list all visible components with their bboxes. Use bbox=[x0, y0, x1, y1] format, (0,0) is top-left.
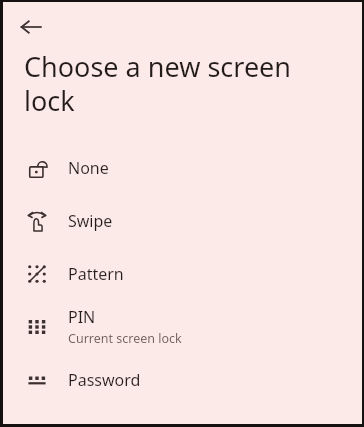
staticText: PIN bbox=[68, 306, 96, 328]
button[interactable]: PIN bbox=[3, 300, 362, 353]
button[interactable]: Back bbox=[11, 7, 51, 47]
staticText: Pattern bbox=[68, 263, 124, 285]
button[interactable]: None bbox=[3, 141, 362, 194]
staticText: Password bbox=[68, 369, 141, 391]
staticText: Choose a new screen lock bbox=[24, 48, 344, 119]
button[interactable]: Password bbox=[3, 353, 362, 406]
button[interactable]: Swipe bbox=[3, 194, 362, 247]
staticText: None bbox=[68, 157, 109, 179]
staticText: Current screen lock bbox=[68, 330, 182, 347]
staticText: Swipe bbox=[68, 210, 113, 232]
button[interactable]: Pattern bbox=[3, 247, 362, 300]
